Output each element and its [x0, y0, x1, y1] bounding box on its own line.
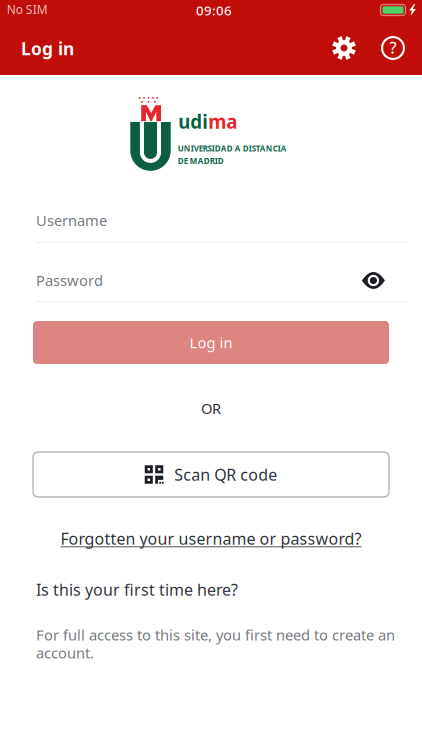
button[interactable]: Settings [322, 26, 366, 70]
staticText: Is this your first time here? [36, 579, 238, 600]
staticText: udi [178, 109, 208, 134]
staticText: Forgotten your username or password? [60, 528, 361, 549]
staticText: For full access to this site, you first … [36, 625, 395, 644]
staticText: UNIVERSIDAD A DISTANCIA [178, 143, 287, 154]
staticText: account. [36, 643, 94, 662]
staticText: Username [36, 210, 107, 230]
staticText: OR [201, 398, 221, 418]
button[interactable]: Log in [33, 321, 389, 364]
button[interactable]: Scan QR code [33, 452, 389, 497]
staticText: Log in [21, 37, 74, 60]
staticText: No SIM [7, 1, 48, 17]
staticText: Password [36, 270, 103, 290]
staticText: ma [208, 109, 237, 134]
button[interactable]: Forgotten your username or password? [0, 528, 422, 549]
staticText: DE MADRID [178, 156, 224, 166]
staticText: 09:06 [196, 1, 232, 19]
button[interactable]: Show password [355, 265, 391, 295]
staticText: ? [389, 37, 396, 58]
button[interactable]: Help [371, 26, 415, 70]
staticText: Scan QR code [174, 464, 277, 485]
staticText: Log in [189, 333, 232, 352]
